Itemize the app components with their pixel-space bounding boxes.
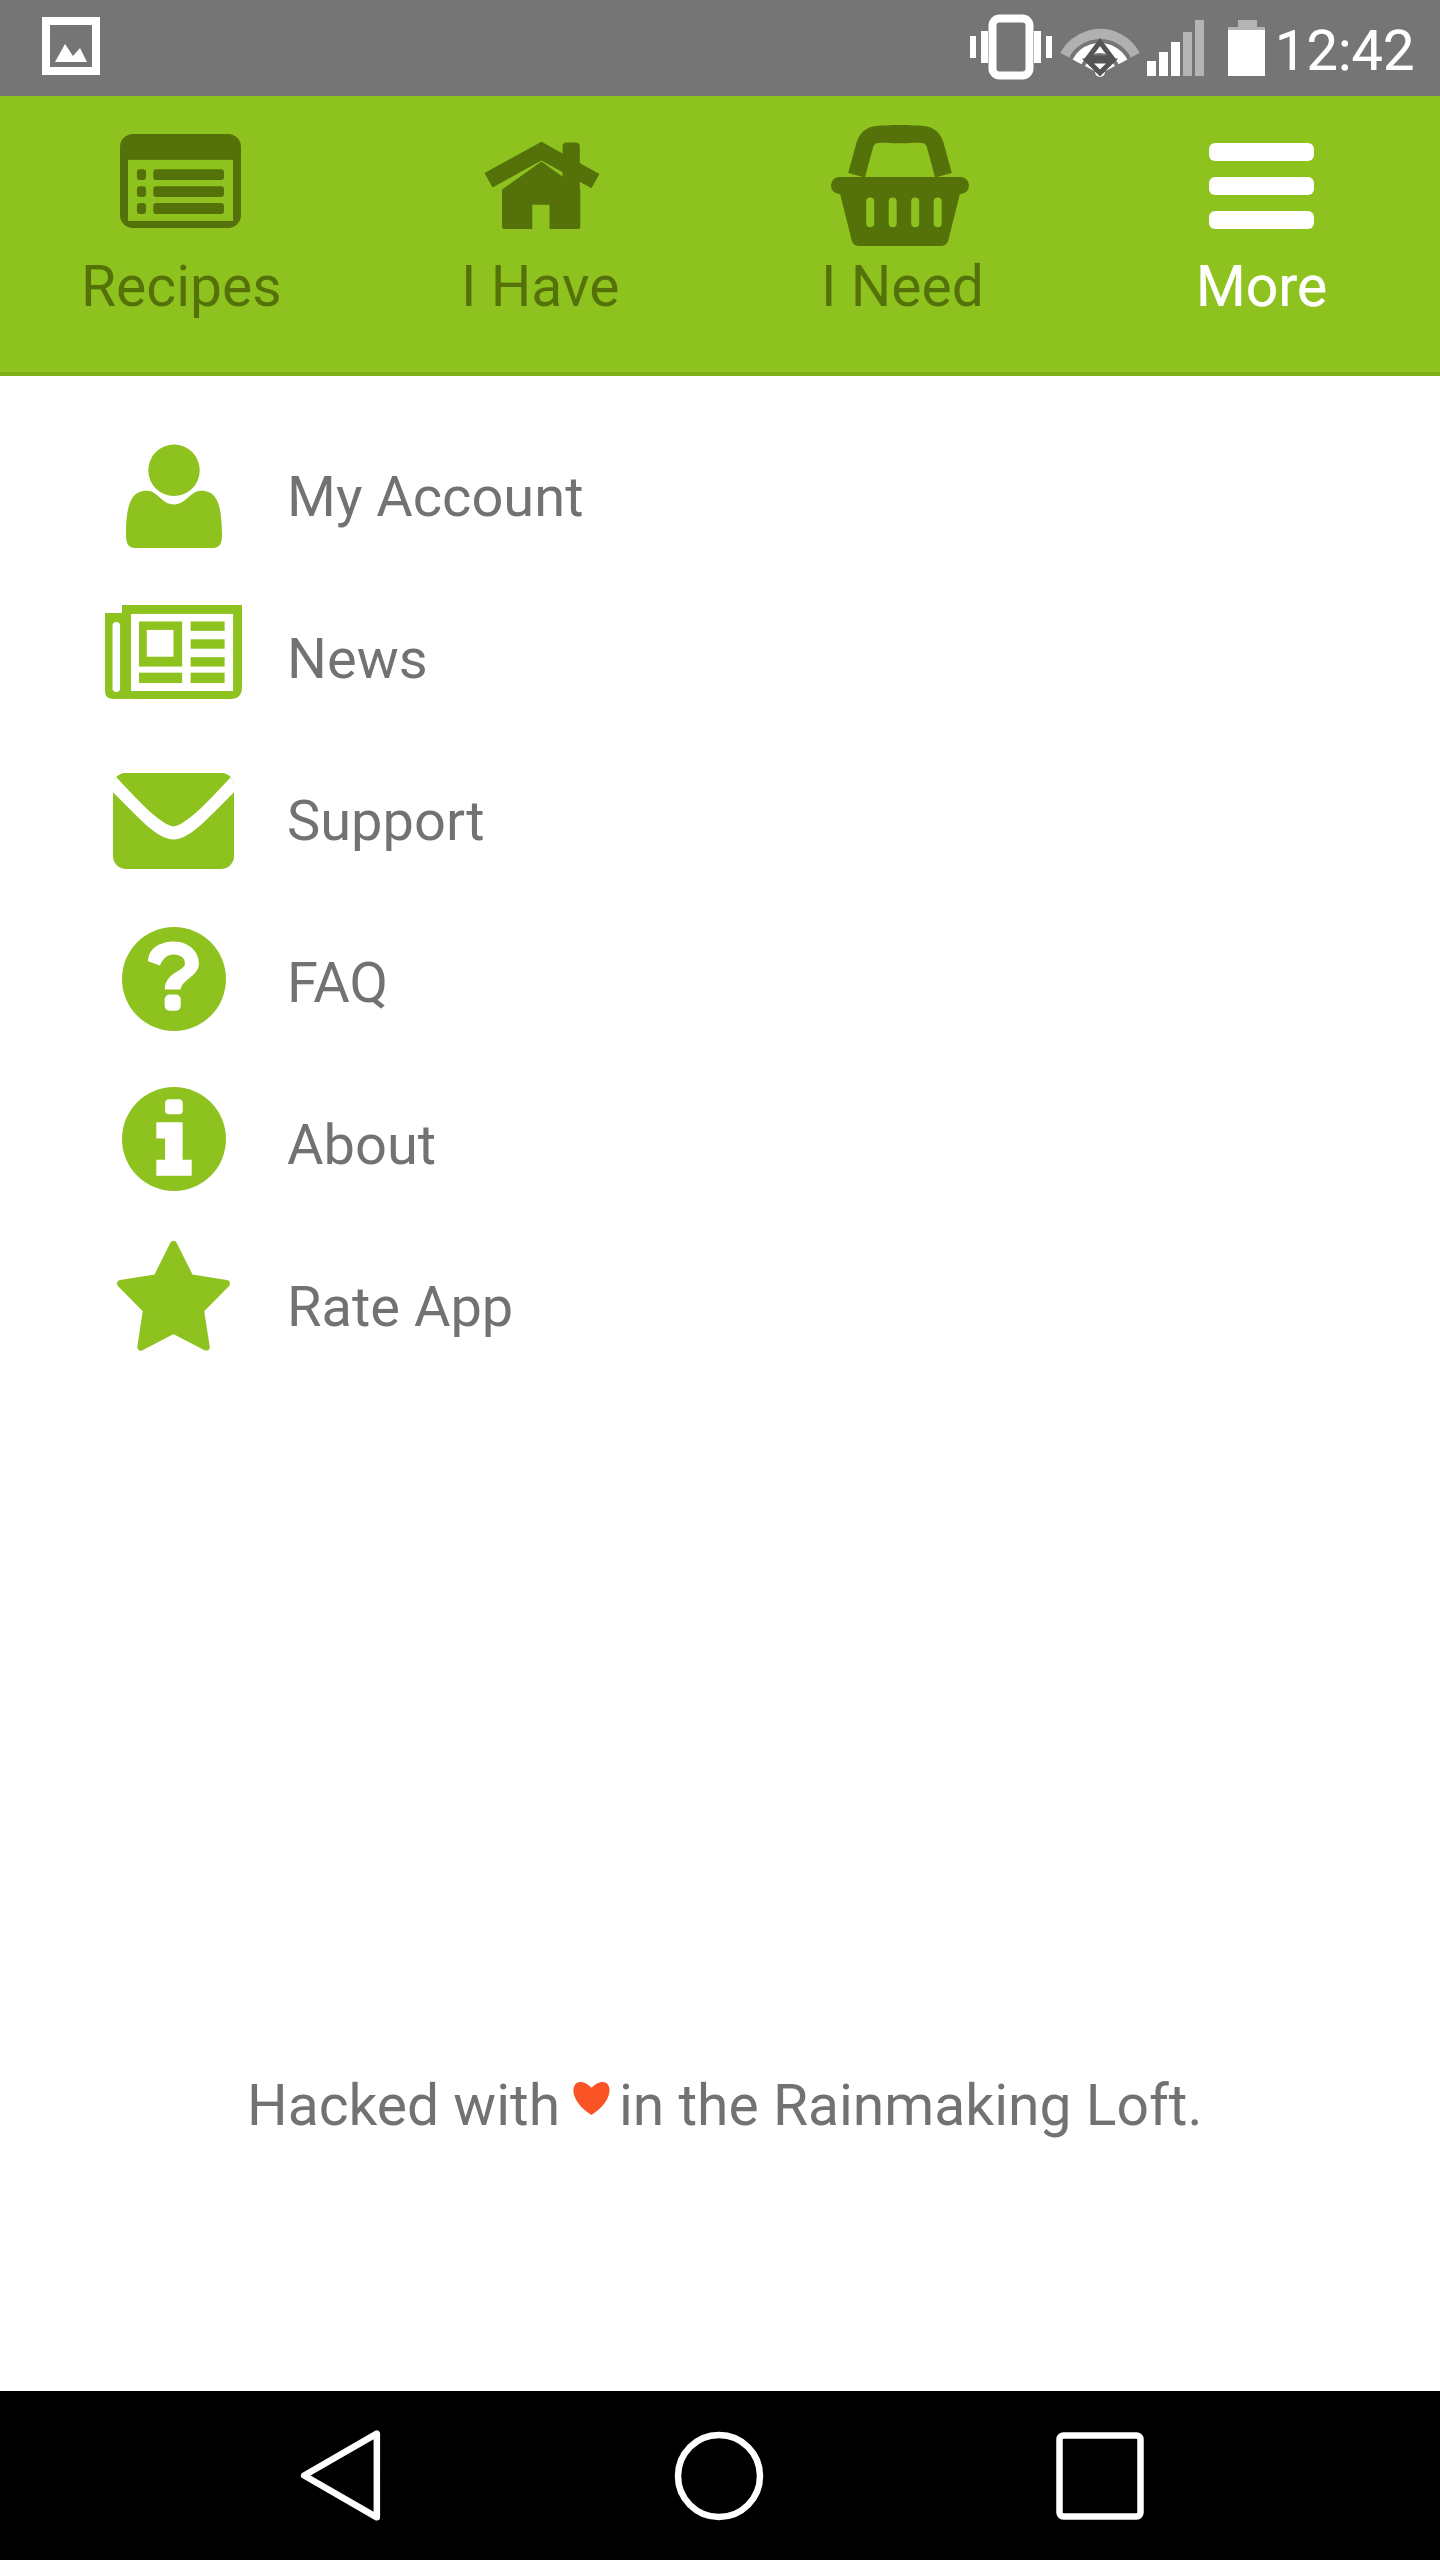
staticText: More bbox=[1196, 253, 1328, 320]
button[interactable]: News bbox=[0, 576, 1440, 738]
staticText: News bbox=[287, 626, 428, 692]
staticText: I Need bbox=[821, 253, 984, 320]
staticText: in the Rainmaking Loft. bbox=[619, 2072, 1203, 2139]
button[interactable]: Home bbox=[639, 2391, 799, 2560]
button[interactable]: More bbox=[1080, 96, 1440, 372]
staticText: 12:42 bbox=[1275, 18, 1415, 84]
staticText: Hacked with bbox=[247, 2072, 561, 2139]
staticText: About bbox=[287, 1112, 437, 1178]
staticText: Support bbox=[287, 788, 485, 854]
staticText: Recipes bbox=[81, 253, 282, 320]
staticText: I Have bbox=[461, 253, 620, 320]
button[interactable]: My Account bbox=[0, 414, 1440, 576]
button[interactable]: About bbox=[0, 1062, 1440, 1224]
button[interactable]: Back bbox=[260, 2391, 420, 2560]
button[interactable]: Recipes bbox=[0, 96, 360, 372]
staticText: Rate App bbox=[287, 1274, 514, 1340]
button[interactable]: I Need bbox=[720, 96, 1080, 372]
button[interactable]: Support bbox=[0, 738, 1440, 900]
staticText: FAQ bbox=[287, 950, 389, 1016]
button[interactable]: I Have bbox=[360, 96, 720, 372]
button[interactable]: Recents bbox=[1020, 2391, 1180, 2560]
button[interactable]: FAQ bbox=[0, 900, 1440, 1062]
button[interactable]: Rate App bbox=[0, 1224, 1440, 1386]
staticText: My Account bbox=[287, 464, 584, 530]
